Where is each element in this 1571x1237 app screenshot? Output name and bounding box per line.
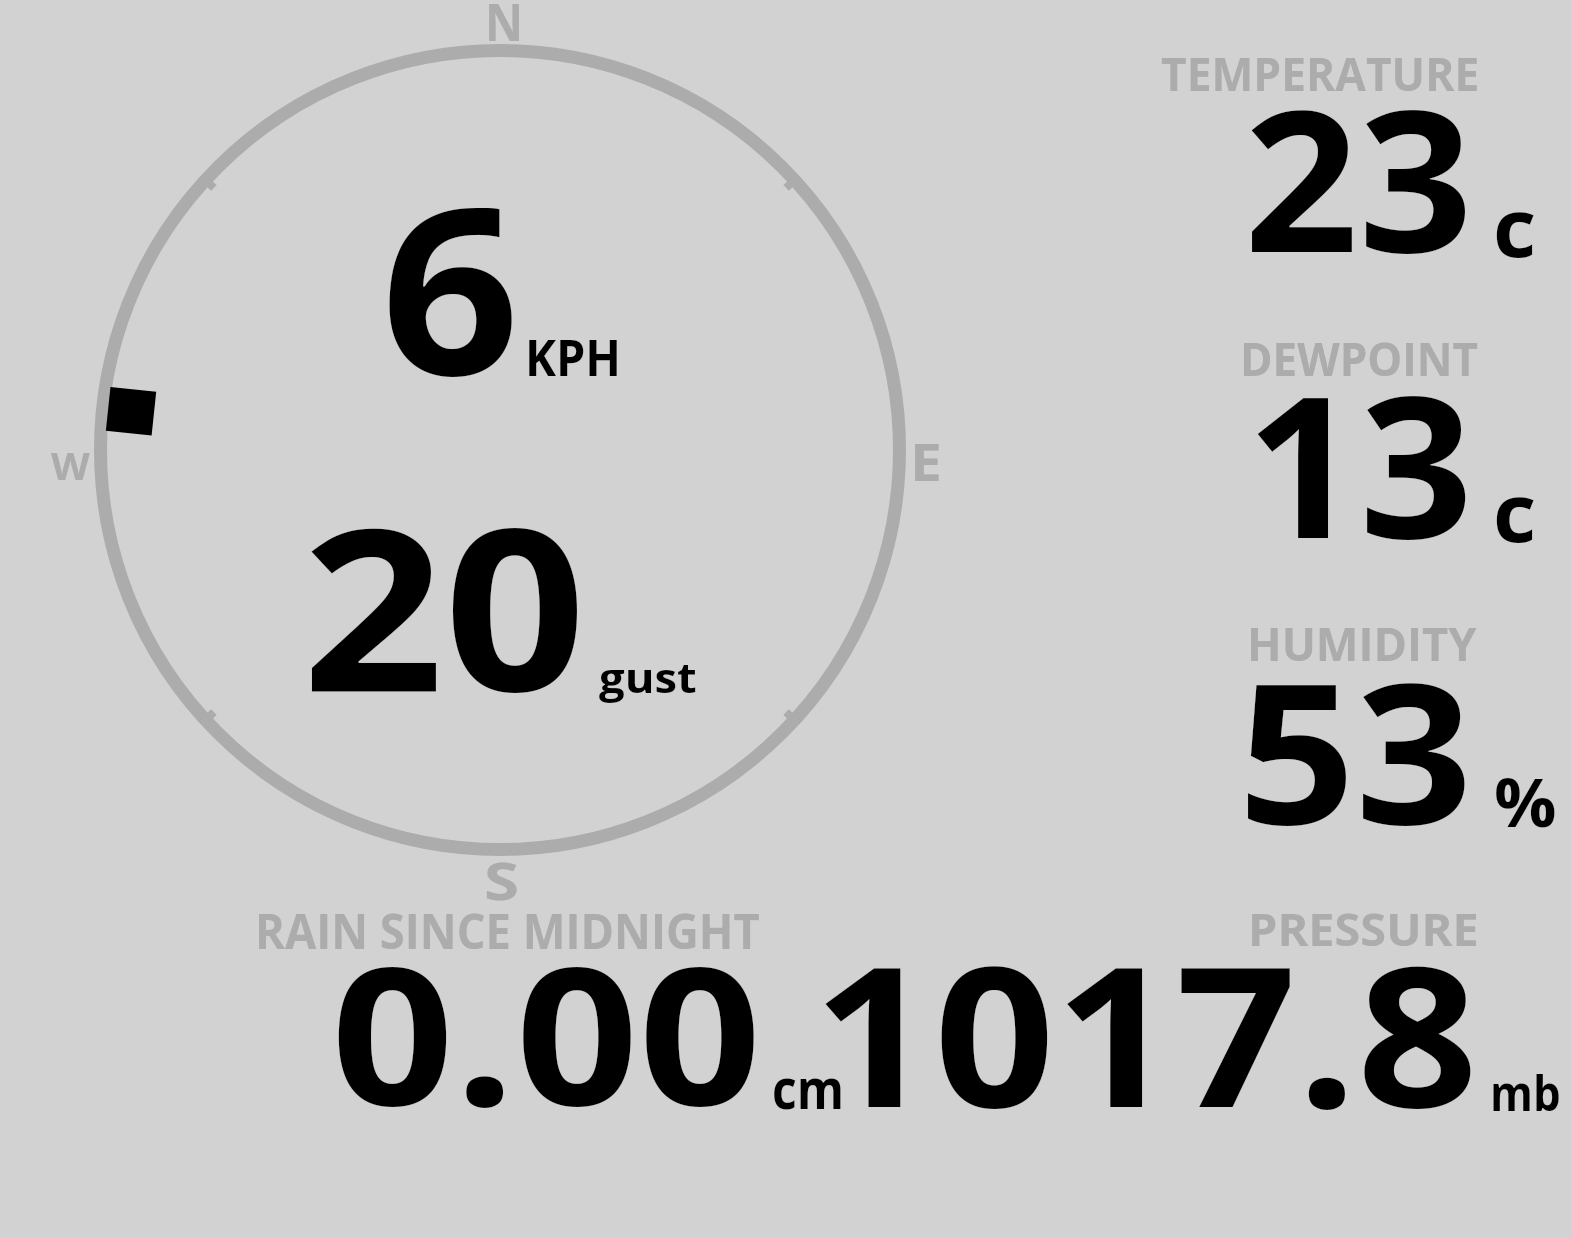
staticText: N <box>485 0 523 56</box>
staticText: 1017.8 <box>813 900 1478 1164</box>
staticText: cm <box>772 1050 844 1125</box>
staticText: c <box>1493 455 1537 565</box>
staticText: 20 <box>302 452 587 757</box>
button[interactable]: Wind direction compass, 6 KPH gusting 20… <box>90 40 910 860</box>
button[interactable]: Pressure 1017.8 mb <box>870 900 1560 1120</box>
staticText: 13 <box>1246 329 1474 596</box>
staticText: gust <box>599 648 697 705</box>
button[interactable]: Rain since midnight 0.00 cm <box>240 900 860 1120</box>
staticText: 23 <box>1244 43 1474 310</box>
button[interactable]: Temperature 23 degrees Celsius <box>1140 40 1571 310</box>
staticText: E <box>910 426 943 497</box>
staticText: c <box>1493 170 1537 280</box>
staticText: 53 <box>1238 617 1473 881</box>
staticText: PRESSURE <box>1248 899 1479 959</box>
staticText: 0.00 <box>331 901 762 1161</box>
staticText: DEWPOINT <box>1240 327 1479 390</box>
button[interactable]: Humidity 53 percent <box>1140 600 1571 850</box>
button[interactable]: Dew point 13 degrees Celsius <box>1140 320 1571 590</box>
staticText: TEMPERATURE <box>1161 42 1480 105</box>
staticText: 6 <box>381 127 520 443</box>
staticText: % <box>1494 757 1558 846</box>
staticText: W <box>51 440 90 490</box>
staticText: S <box>484 844 519 916</box>
staticText: KPH <box>525 322 622 390</box>
staticText: HUMIDITY <box>1247 612 1477 675</box>
staticText: RAIN SINCE MIDNIGHT <box>255 898 761 964</box>
staticText: mb <box>1490 1060 1561 1125</box>
